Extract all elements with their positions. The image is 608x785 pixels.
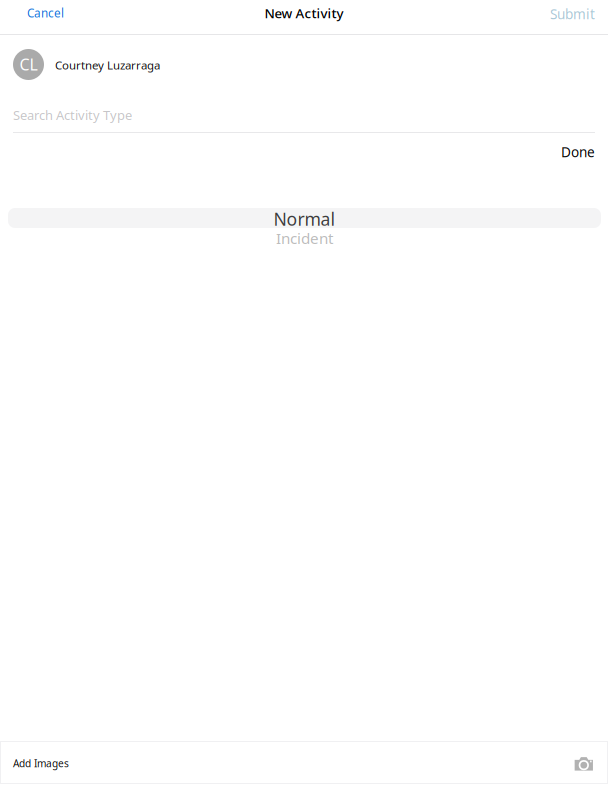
- button[interactable]: Search Activity Type: [13, 106, 595, 133]
- staticText: New Activity: [264, 4, 343, 22]
- staticText: Cancel: [27, 5, 64, 21]
- button[interactable]: Done: [525, 142, 595, 162]
- button[interactable]: Submit: [521, 0, 595, 34]
- button[interactable]: Normal: [8, 209, 601, 229]
- staticText: Submit: [550, 5, 595, 23]
- staticText: Courtney Luzarraga: [55, 57, 160, 73]
- button[interactable]: Incident: [8, 229, 601, 247]
- staticText: Incident: [276, 228, 333, 248]
- button[interactable]: Take photo: [567, 743, 601, 784]
- button[interactable]: Add Images: [13, 742, 153, 783]
- staticText: CL: [19, 53, 37, 75]
- staticText: Done: [561, 143, 595, 161]
- staticText: Normal: [273, 207, 335, 231]
- staticText: Search Activity Type: [13, 106, 132, 124]
- button[interactable]: Cancel: [27, 0, 89, 34]
- staticText: Add Images: [13, 756, 69, 770]
